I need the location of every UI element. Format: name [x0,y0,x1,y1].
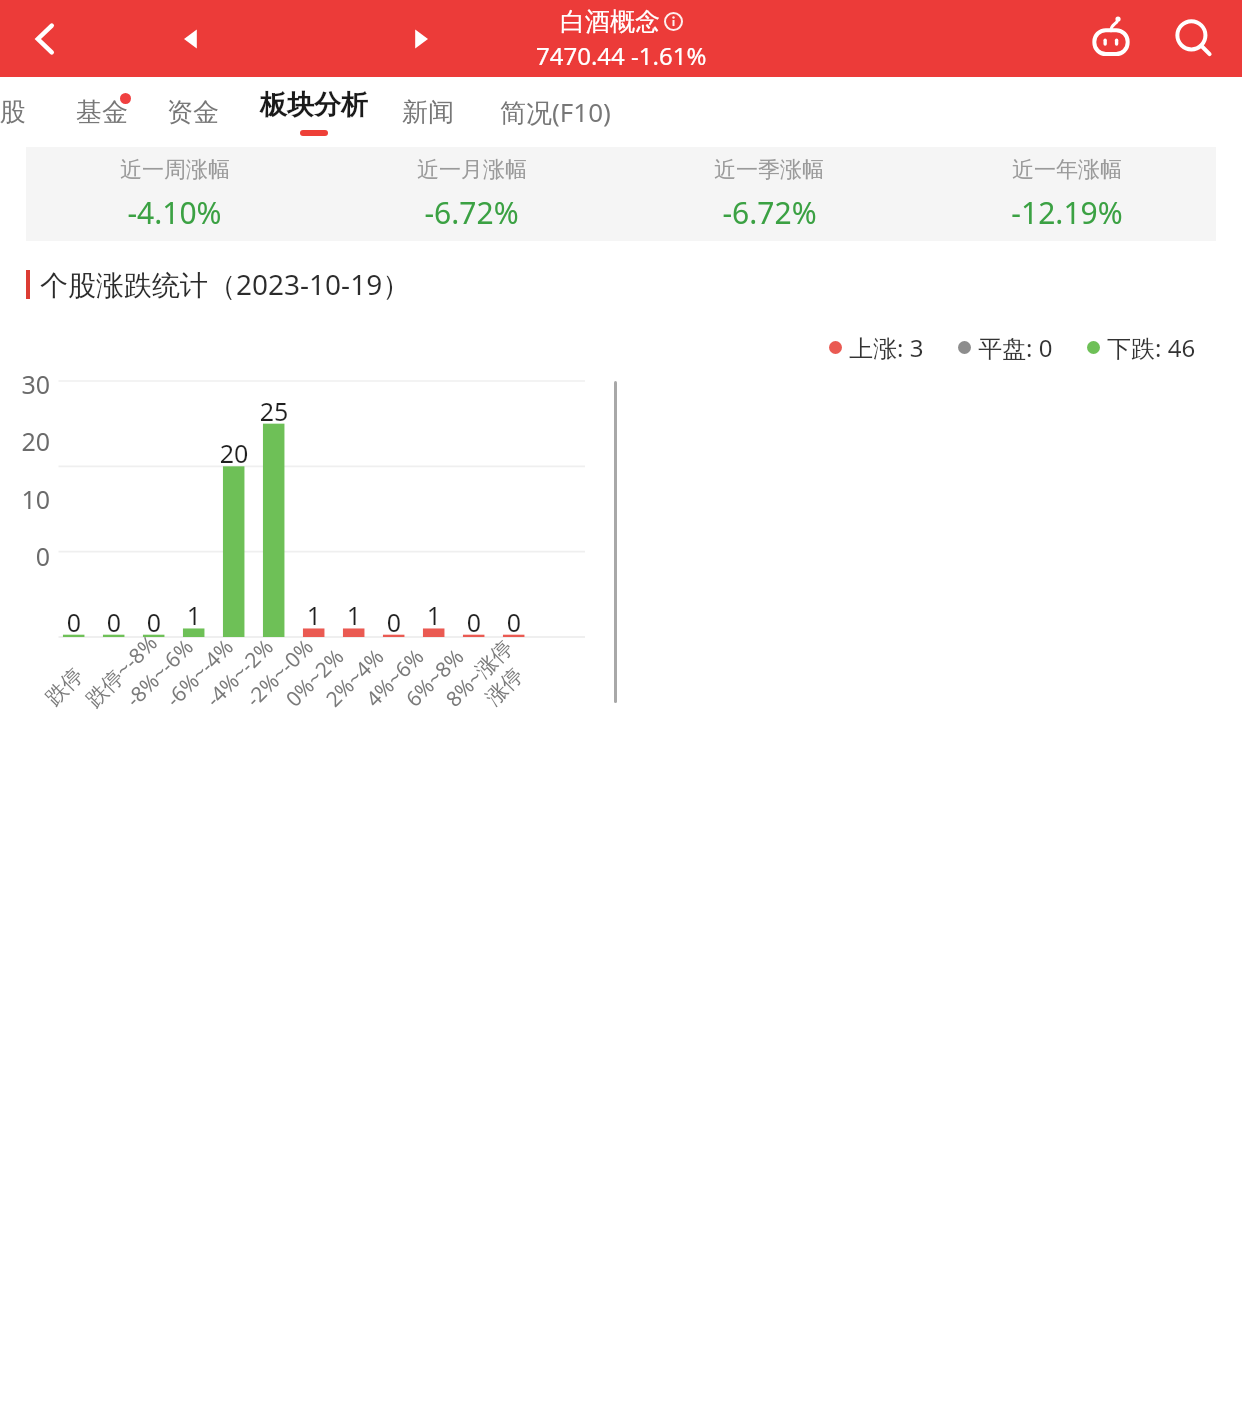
staticText: 0%~2% [279,608,385,713]
staticText: 1 [414,598,454,632]
staticText: 0 [374,605,414,639]
staticText: 8%~涨停 [439,608,545,713]
staticText: 简况(F10) [500,94,611,130]
staticText: 4%~6% [359,608,465,713]
staticText: 1 [334,598,374,632]
button[interactable]: 简况(F10) [490,86,621,138]
button[interactable]: 基金 [66,88,138,137]
staticText: 白酒概念 [560,6,660,37]
staticText: -6%~-4% [159,608,265,713]
staticText: 近一月涨幅 [417,156,527,184]
staticText: 个股涨跌统计（2023-10-19） [40,265,411,303]
button[interactable]: 新闻 [392,88,464,137]
staticText: -8%~-6% [119,608,225,713]
staticText: 0 [454,605,494,639]
staticText: -4.10% [127,192,222,233]
button[interactable]: AI assistant [1085,13,1137,65]
staticText: 新闻 [402,96,454,129]
staticText: 1 [174,598,214,632]
button[interactable]: Back [22,15,70,63]
staticText: -4%~-2% [199,608,305,713]
staticText: 跌停 [40,607,144,711]
staticText: 30 [10,367,50,401]
button[interactable]: 股 [0,88,40,137]
staticText: 20 [10,424,50,458]
button[interactable]: 近一季涨幅 [620,156,918,233]
button[interactable]: Next sector [400,19,440,59]
staticText: 下跌: 46 [1107,331,1196,364]
staticText: 6%~8% [399,608,505,713]
staticText: -12.19% [1011,192,1123,233]
staticText: 0 [134,605,174,639]
staticText: -6.72% [424,192,519,233]
staticText: 近一年涨幅 [1012,156,1122,184]
staticText: 25 [254,394,294,428]
staticText: 0 [94,605,134,639]
staticText: -2%~-0% [239,608,345,713]
staticText: 10 [10,482,50,516]
staticText: 板块分析 [260,88,368,122]
staticText: 近一周涨幅 [120,156,230,184]
staticText: 资金 [167,96,219,129]
staticText: 0 [10,539,50,573]
staticText: 跌停~-8% [79,608,185,713]
button[interactable]: 资金 [157,88,229,137]
button[interactable]: 板块分析 [250,88,378,136]
button[interactable]: 近一年涨幅 [918,156,1216,233]
staticText: 0 [54,605,94,639]
staticText: 2%~4% [319,608,425,713]
staticText: 平盘: 0 [978,331,1053,364]
staticText: 近一季涨幅 [714,156,824,184]
staticText: 基金 [76,96,128,129]
staticText: 1 [294,598,334,632]
staticText: 股 [0,96,26,129]
staticText: 20 [214,436,254,470]
staticText: 0 [494,605,534,639]
staticText: -6.72% [722,192,817,233]
button[interactable]: Previous sector [172,19,212,59]
staticText: 涨停 [480,607,584,711]
button[interactable]: Search [1168,13,1220,65]
staticText: 上涨: 3 [849,331,924,364]
staticText: 7470.44 -1.61% [536,39,707,72]
button[interactable]: 近一月涨幅 [323,156,620,233]
button[interactable]: 近一周涨幅 [26,156,323,233]
